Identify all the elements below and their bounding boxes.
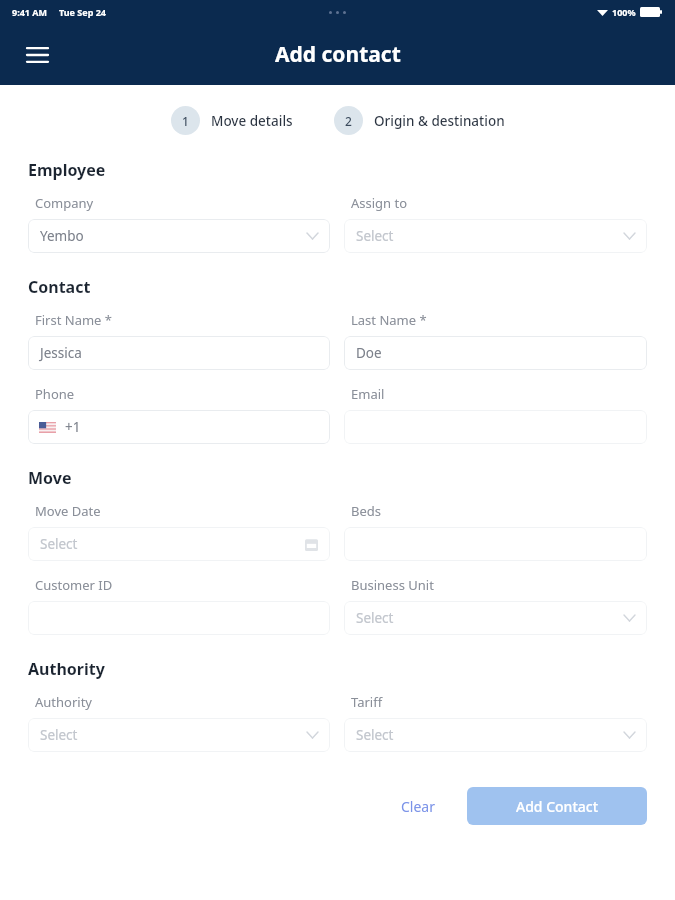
staticText: Add Contact bbox=[516, 797, 598, 816]
staticText: Last Name * bbox=[351, 311, 427, 329]
button[interactable]: Select bbox=[28, 527, 330, 561]
button[interactable]: Clear bbox=[387, 788, 449, 825]
staticText: Authority bbox=[35, 693, 92, 711]
button[interactable] bbox=[344, 527, 647, 561]
button[interactable]: Select bbox=[28, 718, 330, 752]
staticText: Jessica bbox=[40, 344, 82, 362]
button[interactable]: Select bbox=[344, 601, 647, 635]
staticText: Select bbox=[356, 227, 394, 245]
staticText: Email bbox=[351, 385, 385, 403]
staticText: Move Date bbox=[35, 502, 101, 520]
staticText: Select bbox=[356, 609, 394, 627]
staticText: Beds bbox=[351, 502, 382, 520]
staticText: Add contact bbox=[275, 40, 401, 69]
button[interactable]: 2 bbox=[334, 106, 505, 135]
staticText: Contact bbox=[28, 276, 91, 298]
staticText: Business Unit bbox=[351, 576, 434, 594]
staticText: Select bbox=[40, 535, 78, 553]
staticText: 2 bbox=[345, 113, 352, 129]
staticText: Employee bbox=[28, 159, 106, 181]
button[interactable]: +1 bbox=[28, 410, 330, 444]
staticText: Customer ID bbox=[35, 576, 113, 594]
staticText: 9:41 AM bbox=[12, 6, 48, 18]
button[interactable]: 1 bbox=[171, 106, 293, 135]
staticText: Select bbox=[356, 726, 394, 744]
button[interactable]: Select bbox=[344, 718, 647, 752]
staticText: Authority bbox=[28, 658, 105, 680]
staticText: Phone bbox=[35, 385, 75, 403]
button[interactable]: Yembo bbox=[28, 219, 330, 253]
staticText: Select bbox=[40, 726, 78, 744]
staticText: Tue Sep 24 bbox=[59, 6, 106, 18]
staticText: Company bbox=[35, 194, 94, 212]
button[interactable] bbox=[28, 601, 330, 635]
button[interactable]: Select bbox=[344, 219, 647, 253]
staticText: First Name * bbox=[35, 311, 112, 329]
staticText: 100% bbox=[612, 6, 636, 18]
staticText: Clear bbox=[401, 797, 435, 816]
staticText: Origin & destination bbox=[374, 112, 505, 130]
staticText: 1 bbox=[182, 113, 189, 129]
staticText: +1 bbox=[65, 418, 81, 436]
staticText: Tariff bbox=[351, 693, 383, 711]
staticText: Move details bbox=[211, 112, 293, 130]
button[interactable]: Doe bbox=[344, 336, 647, 370]
staticText: Assign to bbox=[351, 194, 408, 212]
button[interactable]: Add Contact bbox=[467, 787, 647, 825]
button[interactable]: Jessica bbox=[28, 336, 330, 370]
staticText: Yembo bbox=[40, 227, 84, 245]
button[interactable] bbox=[344, 410, 647, 444]
staticText: Doe bbox=[356, 344, 382, 362]
button[interactable]: Open navigation menu bbox=[17, 35, 57, 75]
staticText: Move bbox=[28, 467, 72, 489]
